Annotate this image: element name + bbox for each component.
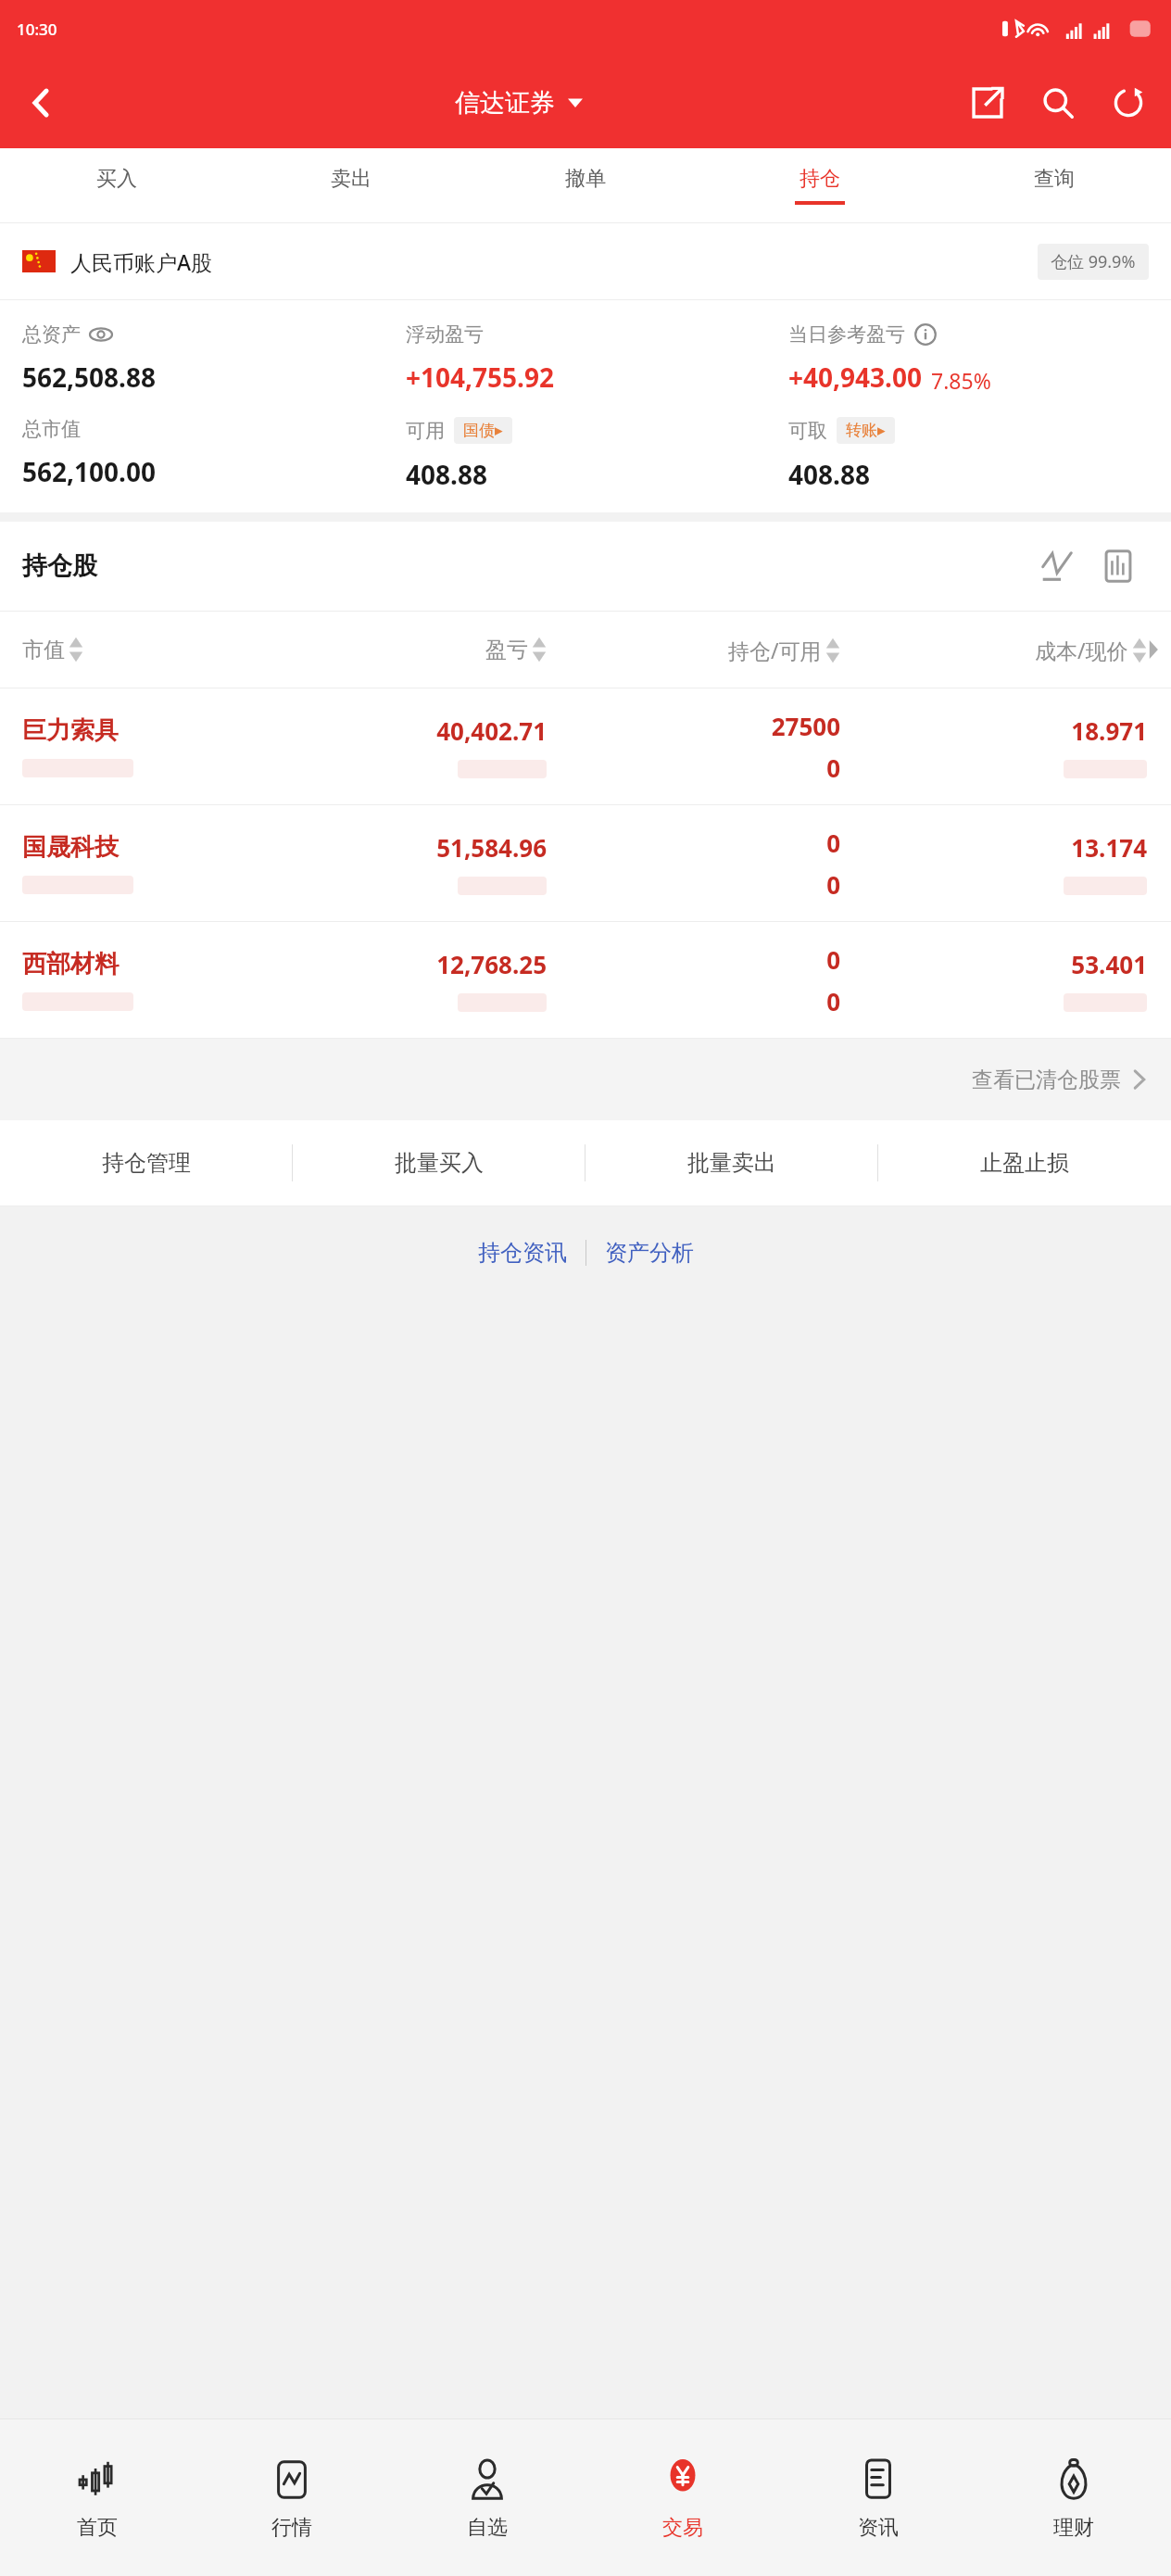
staticText: 查询 [1034,166,1075,192]
staticText: 18.971 [1071,714,1147,747]
button[interactable]: 买入 [0,148,233,222]
staticText: 持仓资讯 [478,1239,567,1267]
staticText: 12,768.25 [436,948,547,980]
button[interactable]: Refresh [1093,60,1164,145]
staticText: 西部材料 [22,949,119,979]
staticText: 卖出 [331,166,371,192]
button[interactable]: 盈亏 [291,636,547,663]
button[interactable]: 行情 [195,2418,389,2576]
staticText: 0 [826,868,840,901]
staticText: 562,100.00 [22,454,156,489]
staticText: 持仓 [800,166,840,192]
staticText: 53.401 [1071,948,1147,980]
staticText: 资产分析 [605,1239,694,1267]
staticText: 0 [826,985,840,1017]
button[interactable]: 查询 [937,148,1171,222]
staticText: 562,508.88 [22,360,156,395]
staticText: 总资产 [22,322,81,347]
staticText: 转账▸ [846,421,886,440]
staticText: 市值 [22,637,65,663]
button[interactable]: 撤单 [468,148,702,222]
button[interactable]: 理财 [976,2418,1171,2576]
button[interactable]: Bar chart [1088,536,1149,597]
staticText: +40,943.00 [788,360,922,395]
staticText: 批量卖出 [687,1149,776,1177]
staticText: 持仓/可用 [728,636,822,664]
button[interactable]: 国晟科技 [0,805,1171,921]
staticText: 40,402.71 [436,714,547,747]
staticText: 自选 [467,2515,508,2541]
staticText: 行情 [271,2515,312,2541]
staticText: 0 [826,827,840,859]
staticText: 批量买入 [395,1149,484,1177]
staticText: 408.88 [788,457,870,492]
staticText: 查看已清仓股票 [972,1067,1121,1093]
button[interactable]: 巨力索具 [0,688,1171,804]
staticText: 408.88 [406,457,487,492]
button[interactable]: 市值 [22,636,291,663]
staticText: 51,584.96 [436,831,547,864]
staticText: 持仓管理 [102,1149,191,1177]
button[interactable]: 持仓资讯 [460,1230,585,1276]
button[interactable]: 国债▸ [454,417,512,444]
button[interactable]: 成本/现价 [840,636,1147,664]
button[interactable]: 持仓/可用 [547,636,840,664]
button[interactable]: 首页 [0,2418,195,2576]
button[interactable]: 信达证券 [449,87,588,119]
staticText: 13.174 [1071,831,1147,864]
staticText: 交易 [662,2515,703,2541]
button[interactable]: Share [952,60,1023,145]
button[interactable]: Search [1023,60,1093,145]
button[interactable]: 批量买入 [293,1120,585,1206]
staticText: 0 [826,751,840,784]
staticText: +104,755.92 [406,360,554,395]
button[interactable]: 资讯 [780,2418,976,2576]
button[interactable]: 批量卖出 [585,1120,878,1206]
button[interactable]: 转账▸ [837,417,895,444]
staticText: 浮动盈亏 [406,322,484,347]
staticText: 持仓股 [22,550,97,582]
staticText: 信达证券 [455,87,555,119]
staticText: 止盈止损 [980,1149,1069,1177]
button[interactable]: 卖出 [233,148,468,222]
button[interactable]: 持仓管理 [0,1120,293,1206]
button[interactable]: 持仓 [702,148,937,222]
staticText: 当日参考盈亏 [788,322,905,347]
staticText: 首页 [77,2515,118,2541]
staticText: 仓位 99.9% [1051,250,1136,273]
button[interactable]: 自选 [389,2418,585,2576]
staticText: 理财 [1053,2515,1094,2541]
staticText: 国晟科技 [22,832,119,863]
staticText: 资讯 [858,2515,899,2541]
staticText: 可取 [788,419,827,443]
button[interactable]: 查看已清仓股票 [0,1039,1171,1120]
staticText: 撤单 [565,166,606,192]
button[interactable]: 人民币账户A股 [22,223,1149,299]
staticText: 国债▸ [463,421,503,440]
staticText: 人民币账户A股 [70,247,213,276]
button[interactable]: 止盈止损 [878,1120,1171,1206]
button[interactable]: Back [0,60,85,145]
button[interactable]: Line chart [1026,536,1088,597]
staticText: 成本/现价 [1035,636,1128,664]
staticText: 买入 [96,166,137,192]
staticText: 10:30 [17,19,57,40]
staticText: 盈亏 [485,637,528,663]
staticText: 可用 [406,419,445,443]
staticText: 总市值 [22,417,81,441]
staticText: 27500 [771,710,840,742]
staticText: 0 [826,943,840,976]
button[interactable]: 西部材料 [0,922,1171,1038]
button[interactable]: 资产分析 [586,1230,712,1276]
staticText: 巨力索具 [22,715,119,746]
staticText: 7.85% [931,366,991,395]
button[interactable]: 交易 [585,2418,780,2576]
